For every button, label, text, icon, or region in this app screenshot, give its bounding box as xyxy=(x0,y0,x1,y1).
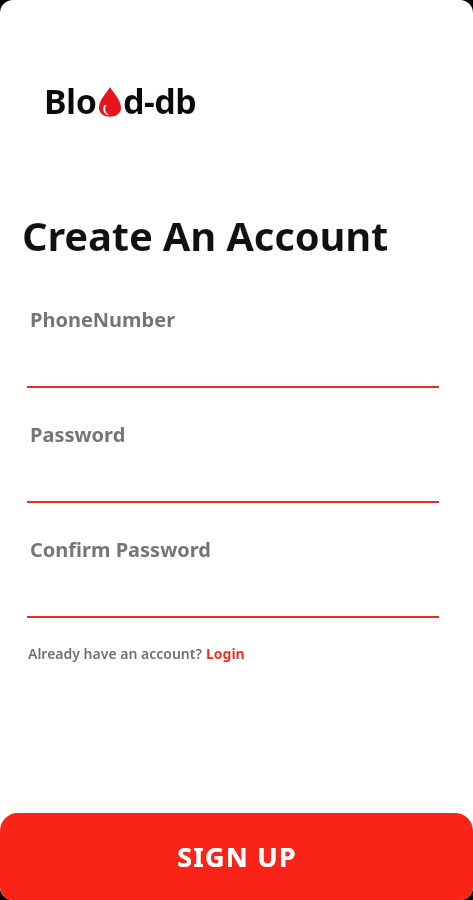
staticText: Already have an account? xyxy=(28,644,206,663)
button[interactable]: Confirm Password xyxy=(27,530,439,624)
button[interactable]: Already have an account? xyxy=(28,642,245,665)
staticText: Login xyxy=(206,644,245,663)
button[interactable]: PhoneNumber xyxy=(27,300,439,394)
staticText: PhoneNumber xyxy=(30,306,176,333)
staticText: Create An Account xyxy=(22,208,389,262)
button[interactable]: SIGN UP xyxy=(0,813,473,900)
staticText: d-db xyxy=(123,78,197,124)
staticText: Confirm Password xyxy=(30,536,211,563)
button[interactable]: Password xyxy=(27,415,439,509)
staticText: Blo xyxy=(44,78,97,124)
staticText: SIGN UP xyxy=(177,838,297,875)
staticText: Password xyxy=(30,421,126,448)
